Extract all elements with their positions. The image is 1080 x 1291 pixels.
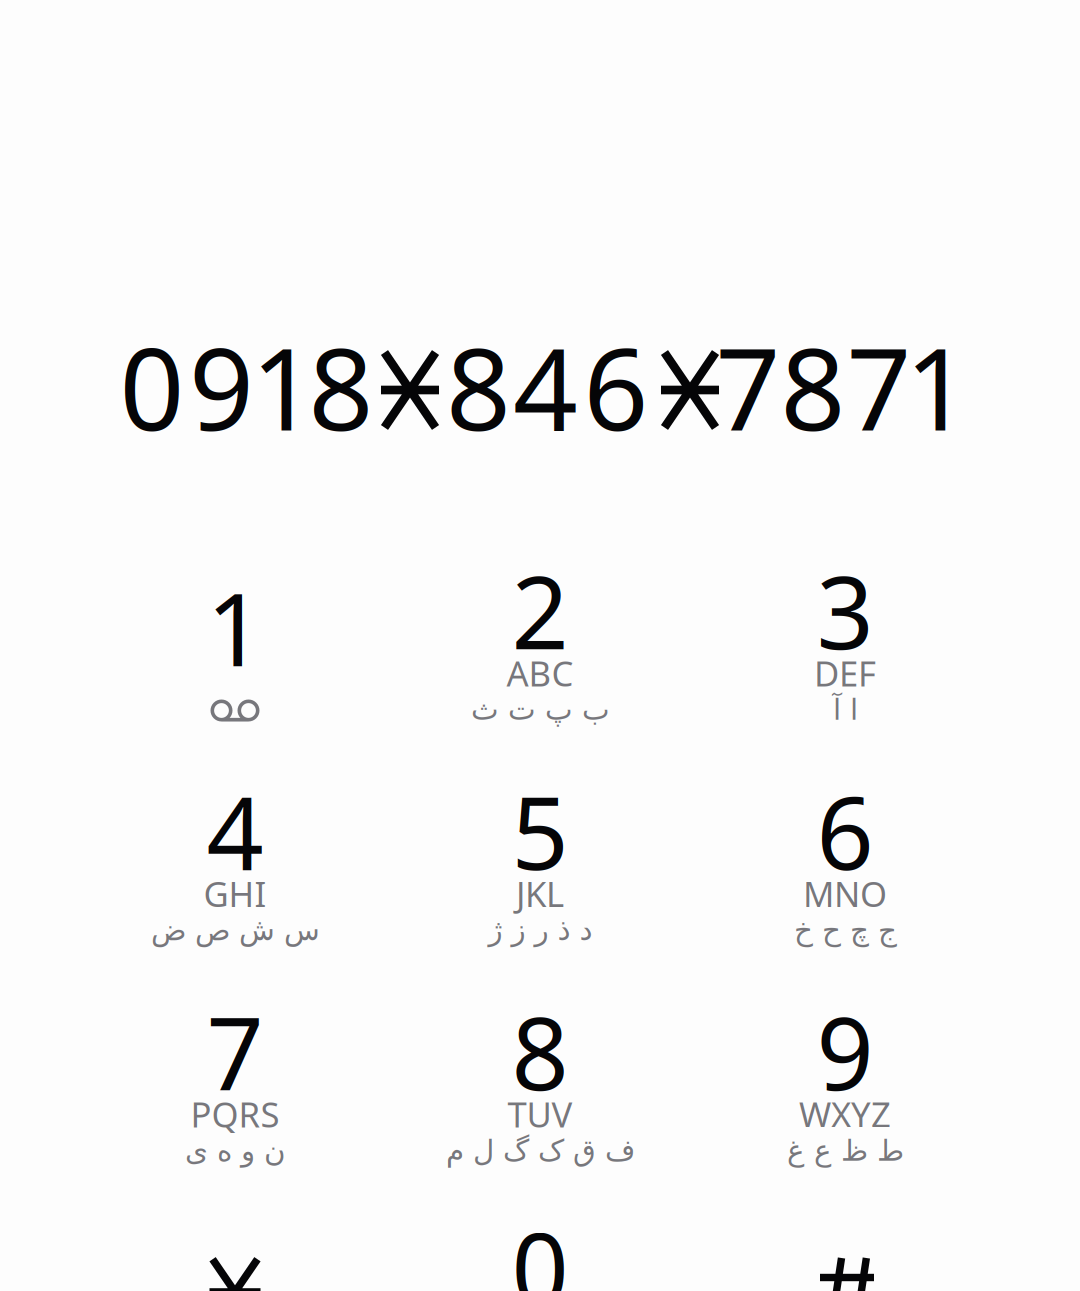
staticText: ب پ ت ث [470, 693, 609, 726]
staticText: DEF [814, 650, 876, 696]
staticText: ن و ه ی [184, 1134, 285, 1167]
staticText: 8 [308, 311, 373, 462]
button[interactable]: 9 [695, 975, 995, 1175]
staticText: 1 [206, 561, 263, 694]
button[interactable]: 0 [390, 1196, 690, 1291]
button[interactable]: Pound [695, 1196, 995, 1291]
staticText: 5 [511, 765, 568, 897]
staticText: 8 [446, 311, 511, 462]
staticText: TUV [507, 1091, 572, 1137]
staticText: ج چ ح خ [793, 913, 896, 947]
staticText: ط ظ ع غ [786, 1134, 903, 1167]
button[interactable]: 2 [390, 534, 690, 734]
staticText: 8 [511, 985, 568, 1118]
staticText: 3 [816, 544, 873, 677]
staticText: ABC [506, 650, 573, 696]
button[interactable]: 1 [85, 534, 385, 734]
staticText: 8 [780, 311, 845, 462]
staticText: 6 [816, 765, 873, 897]
staticText: 7 [715, 311, 780, 462]
staticText: 7 [846, 311, 911, 462]
button[interactable]: 3 [695, 534, 995, 734]
button[interactable]: Star [85, 1196, 385, 1291]
button[interactable]: 7 [85, 975, 385, 1175]
staticText: ف ق ک گ ل م [445, 1134, 634, 1167]
staticText: س ش ص ض [150, 913, 319, 947]
staticText: د ذ ر ز ژ [488, 913, 592, 947]
staticText: 6 [583, 311, 648, 462]
staticText: 4 [513, 311, 578, 462]
staticText: 2 [511, 544, 568, 677]
staticText: 1 [251, 311, 316, 462]
staticText: 9 [816, 985, 873, 1118]
staticText: 1 [905, 311, 970, 462]
staticText: ا آ [832, 693, 857, 726]
staticText: WXYZ [799, 1091, 891, 1137]
staticText: 0 [511, 1201, 568, 1291]
button[interactable]: 4 [85, 755, 385, 955]
button[interactable]: 5 [390, 755, 690, 955]
staticText: 9 [189, 311, 254, 462]
button[interactable]: 6 [695, 755, 995, 955]
button[interactable]: 8 [390, 975, 690, 1175]
staticText: 7 [206, 985, 263, 1118]
staticText: JKL [516, 870, 564, 916]
staticText: 4 [206, 765, 263, 897]
staticText: 0 [119, 311, 184, 462]
staticText: PQRS [190, 1091, 279, 1137]
staticText: MNO [803, 870, 887, 916]
staticText: GHI [203, 870, 266, 916]
